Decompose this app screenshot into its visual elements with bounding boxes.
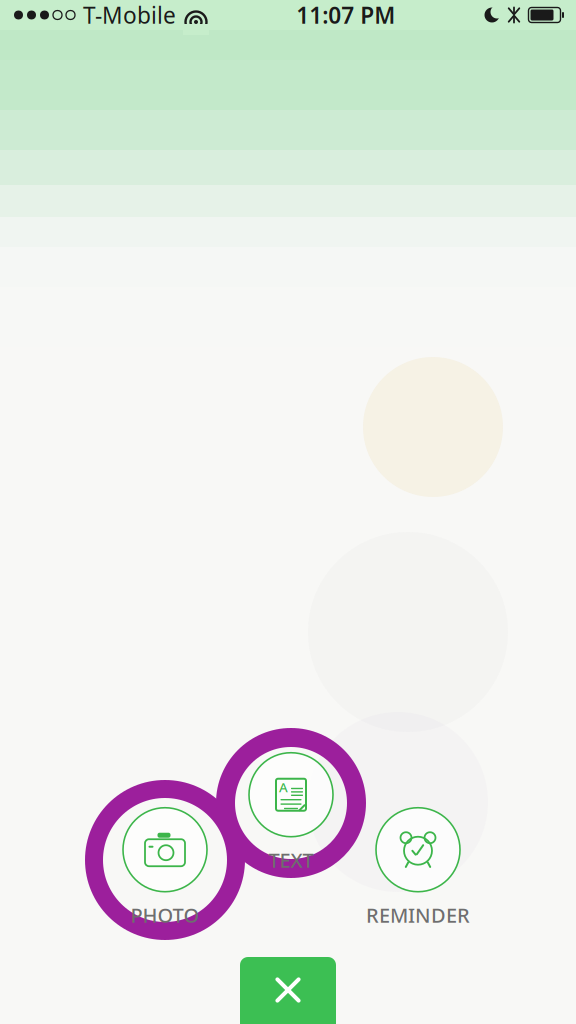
button[interactable]: Close xyxy=(240,957,336,1024)
staticText: TEXT xyxy=(268,847,313,873)
staticText: 11:07 PM xyxy=(296,0,395,30)
staticText: T-Mobile xyxy=(83,0,176,30)
staticText: PHOTO xyxy=(130,902,199,928)
button[interactable]: REMINDER xyxy=(353,808,483,928)
button[interactable]: A xyxy=(226,753,356,873)
button[interactable]: PHOTO xyxy=(100,808,230,928)
staticText: A xyxy=(279,778,288,796)
staticText: REMINDER xyxy=(366,902,470,928)
